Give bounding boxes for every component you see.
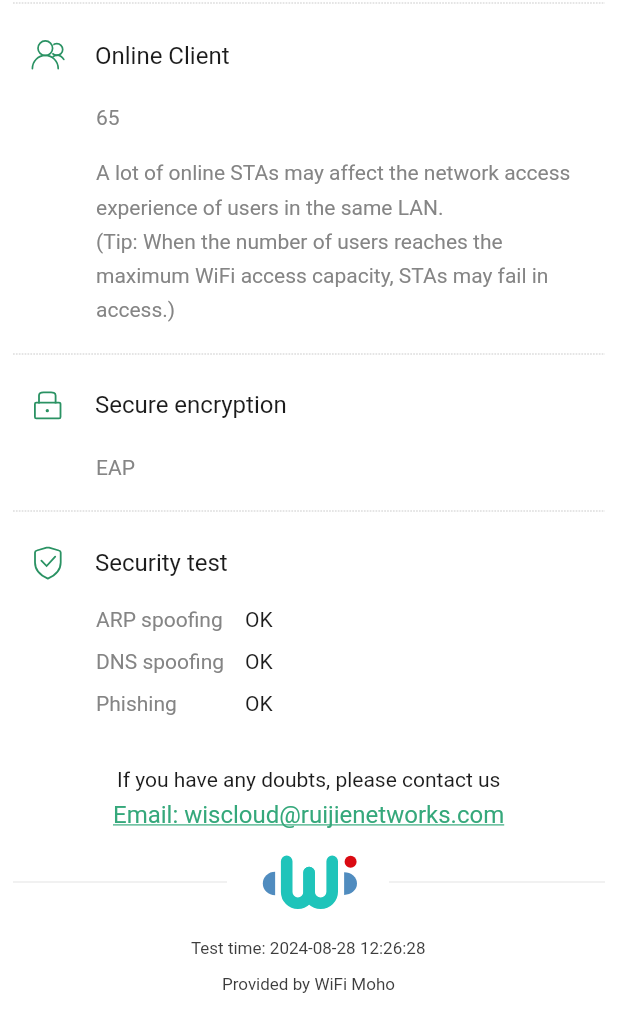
staticText: ARP spoofing — [96, 608, 223, 633]
staticText: OK — [245, 692, 273, 717]
staticText: Online Client — [95, 42, 230, 70]
button[interactable]: DNS spoofing — [96, 650, 296, 675]
staticText: Secure encryption — [95, 391, 287, 419]
staticText: If you have any doubts, please contact u… — [117, 768, 501, 793]
staticText: EAP — [96, 456, 135, 481]
button[interactable]: ARP spoofing — [96, 608, 296, 633]
button[interactable]: Secure encryption — [0, 380, 617, 430]
button[interactable]: Online clients — [0, 28, 617, 82]
button[interactable]: Security test — [0, 538, 617, 590]
staticText: 65 — [96, 106, 120, 131]
staticText: OK — [245, 650, 273, 675]
staticText: A lot of online STAs may affect the netw… — [96, 161, 586, 322]
other: Online clients — [31, 38, 65, 72]
button[interactable]: Phishing — [96, 692, 296, 717]
other: WiFi Moho logo — [258, 845, 362, 915]
button[interactable]: Email: wiscloud@ruijienetworks.com — [113, 801, 505, 829]
other: Secure encryption — [34, 392, 61, 419]
staticText: Security test — [95, 549, 228, 577]
other: Security test — [34, 546, 62, 580]
staticText: Test time: 2024-08-28 12:26:28 — [191, 938, 426, 958]
staticText: DNS spoofing — [96, 650, 225, 675]
staticText: OK — [245, 608, 273, 633]
staticText: Provided by WiFi Moho — [222, 974, 395, 994]
staticText: Phishing — [96, 692, 177, 717]
